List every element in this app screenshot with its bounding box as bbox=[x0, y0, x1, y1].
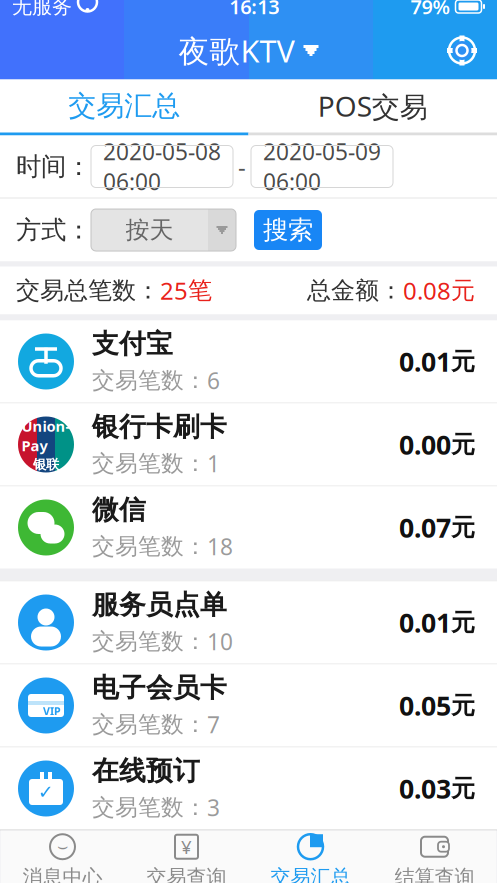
staticText: 6 bbox=[207, 365, 220, 395]
staticText: 在线预订 bbox=[92, 755, 200, 787]
staticText: 0.01 bbox=[399, 344, 451, 379]
staticText: POS交易 bbox=[318, 87, 428, 125]
staticText: 结算查询 bbox=[394, 865, 474, 883]
button[interactable]: 按天 bbox=[91, 209, 236, 251]
button[interactable]: ✓ bbox=[0, 747, 497, 829]
staticText: VIP bbox=[43, 704, 61, 718]
staticText: 元 bbox=[451, 430, 475, 459]
button[interactable]: POS交易 bbox=[248, 79, 497, 132]
button[interactable]: 服务员点单 bbox=[0, 581, 497, 663]
button[interactable]: 夜歌KTV bbox=[168, 24, 328, 77]
staticText: 元 bbox=[451, 276, 475, 305]
staticText: 消息中心 bbox=[22, 865, 102, 883]
staticText: - bbox=[238, 151, 246, 182]
staticText: 无服务 bbox=[12, 0, 72, 19]
staticText: 元 bbox=[451, 774, 475, 803]
button[interactable]: 2020-05-08 06:00 bbox=[91, 145, 233, 187]
staticText: ¥ bbox=[181, 834, 192, 859]
staticText: 总金额： bbox=[307, 276, 403, 305]
staticText: 0.07 bbox=[399, 510, 451, 545]
button[interactable]: 2020-05-09 06:00 bbox=[251, 145, 393, 187]
staticText: 18 bbox=[207, 531, 233, 561]
button[interactable]: 交易汇总 bbox=[0, 79, 248, 132]
button[interactable]: 微信 bbox=[0, 486, 497, 568]
staticText: ⌣ bbox=[57, 838, 68, 855]
button[interactable]: 交易汇总 bbox=[248, 830, 372, 883]
staticText: 方式： bbox=[16, 214, 91, 245]
button[interactable]: 设置 bbox=[437, 25, 487, 75]
staticText: 银行卡刷卡 bbox=[92, 411, 227, 443]
staticText: 25 bbox=[160, 275, 188, 306]
staticText: 交易笔数： bbox=[92, 793, 207, 821]
staticText: 微信 bbox=[92, 494, 146, 526]
button[interactable]: ⌣ bbox=[0, 830, 124, 883]
button[interactable]: 搜索 bbox=[254, 210, 322, 250]
staticText: 79% bbox=[410, 0, 450, 20]
staticText: ✓ bbox=[38, 781, 54, 803]
staticText: 16:13 bbox=[229, 0, 279, 20]
staticText: 银联 bbox=[33, 456, 59, 473]
staticText: 交易汇总 bbox=[68, 89, 180, 123]
staticText: 元 bbox=[451, 691, 475, 720]
staticText: 交易笔数： bbox=[92, 627, 207, 655]
staticText: 交易笔数： bbox=[92, 710, 207, 738]
staticText: 1 bbox=[207, 448, 220, 478]
staticText: 笔 bbox=[188, 276, 212, 305]
button[interactable]: 支付宝 bbox=[0, 320, 497, 402]
staticText: 2020-05-09 06:00 bbox=[263, 136, 381, 197]
staticText: 7 bbox=[207, 709, 220, 739]
staticText: 支付宝 bbox=[92, 328, 173, 360]
staticText: 交易汇总 bbox=[270, 865, 350, 883]
staticText: 0.01 bbox=[399, 605, 451, 640]
staticText: 交易总笔数： bbox=[16, 276, 160, 305]
staticText: 交易笔数： bbox=[92, 532, 207, 560]
button[interactable]: ¥ bbox=[124, 830, 248, 883]
staticText: 0.00 bbox=[399, 427, 451, 462]
staticText: 电子会员卡 bbox=[92, 672, 227, 704]
staticText: 0.03 bbox=[399, 771, 451, 806]
staticText: 2020-05-08 06:00 bbox=[103, 136, 221, 197]
staticText: 0.05 bbox=[399, 688, 451, 723]
staticText: 搜索 bbox=[263, 214, 313, 245]
staticText: 按天 bbox=[125, 215, 173, 245]
button[interactable]: VIP bbox=[0, 664, 497, 746]
staticText: 元 bbox=[451, 513, 475, 542]
staticText: 元 bbox=[451, 608, 475, 637]
staticText: 10 bbox=[207, 626, 233, 656]
staticText: 交易查询 bbox=[146, 865, 226, 883]
staticText: 夜歌KTV bbox=[178, 30, 294, 71]
staticText: 0.08 bbox=[403, 275, 451, 306]
staticText: 时间： bbox=[16, 151, 91, 182]
staticText: UnionPay bbox=[21, 416, 70, 455]
staticText: 服务员点单 bbox=[92, 589, 227, 621]
staticText: 交易笔数： bbox=[92, 449, 207, 477]
staticText: 交易笔数： bbox=[92, 366, 207, 394]
staticText bbox=[72, 0, 77, 20]
staticText: 元 bbox=[451, 347, 475, 376]
button[interactable]: 结算查询 bbox=[372, 830, 496, 883]
staticText: 3 bbox=[207, 792, 220, 822]
button[interactable]: UnionPay bbox=[0, 403, 497, 485]
